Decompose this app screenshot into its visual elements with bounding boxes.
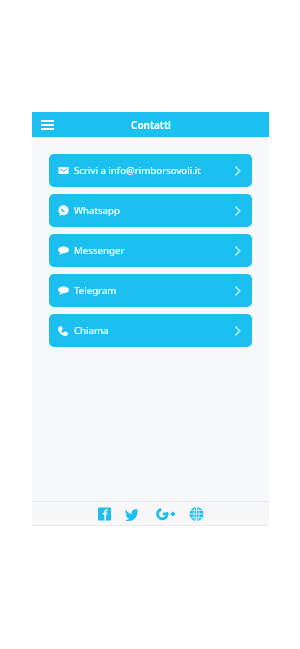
- button[interactable]: Whatsapp: [49, 194, 252, 227]
- button[interactable]: Website: [189, 504, 204, 524]
- button[interactable]: Menu: [32, 112, 62, 137]
- staticText: Whatsapp: [74, 204, 120, 217]
- button[interactable]: Scrivi a info@rimborsovoli.it: [49, 154, 252, 187]
- staticText: Chiama: [74, 324, 109, 337]
- staticText: Scrivi a info@rimborsovoli.it: [74, 164, 201, 177]
- staticText: Telegram: [74, 284, 117, 297]
- button[interactable]: Google Plus: [157, 504, 176, 524]
- button[interactable]: Twitter: [125, 504, 139, 524]
- button[interactable]: Facebook: [98, 504, 111, 524]
- button[interactable]: Telegram: [49, 274, 252, 307]
- button[interactable]: Messenger: [49, 234, 252, 267]
- button[interactable]: Chiama: [49, 314, 252, 347]
- staticText: Contatti: [131, 118, 171, 132]
- staticText: Messenger: [74, 244, 125, 257]
